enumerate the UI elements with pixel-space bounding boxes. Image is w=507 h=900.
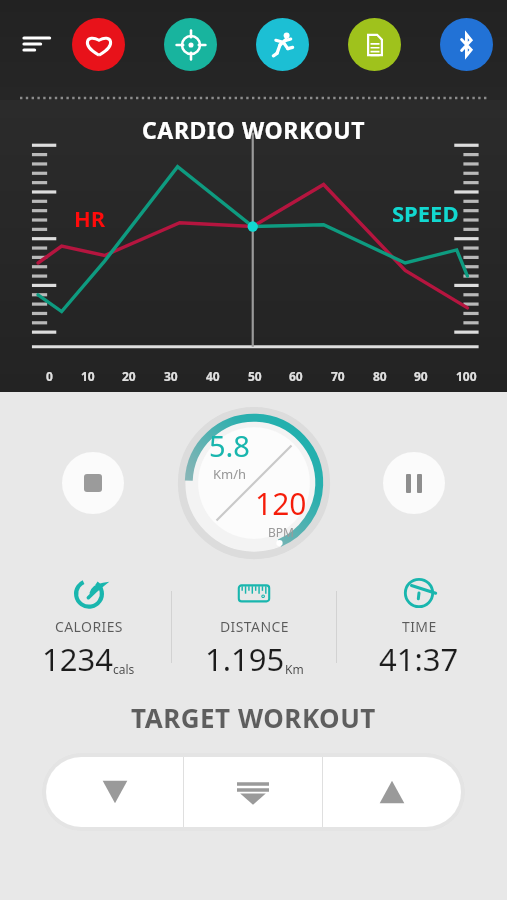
staticText: 5.8 xyxy=(209,426,250,465)
button[interactable]: Menu xyxy=(14,21,60,67)
button[interactable]: Target xyxy=(164,18,217,71)
staticText: BPM xyxy=(268,524,294,540)
staticText: DISTANCE xyxy=(220,617,289,636)
staticText: 70 xyxy=(331,368,345,384)
staticText: 41:37 xyxy=(379,638,459,680)
staticText: TIME xyxy=(402,617,437,636)
button[interactable]: Bluetooth xyxy=(440,18,493,71)
button[interactable]: Heart rate xyxy=(72,18,125,71)
staticText: Km xyxy=(285,661,304,677)
button[interactable]: Set target xyxy=(184,757,322,827)
staticText: SPEED xyxy=(392,198,459,228)
staticText: 120 xyxy=(255,483,307,524)
button[interactable]: Workout gauge xyxy=(179,408,329,558)
staticText: CALORIES xyxy=(55,617,123,636)
button[interactable]: Pause xyxy=(383,452,445,514)
staticText: 1234 xyxy=(42,638,113,680)
staticText: 50 xyxy=(248,368,262,384)
button[interactable]: TIME xyxy=(337,568,501,686)
button[interactable]: Reports xyxy=(348,18,401,71)
staticText: cals xyxy=(113,661,135,677)
staticText: Km/h xyxy=(213,465,247,483)
button[interactable]: DISTANCE xyxy=(172,568,336,686)
staticText: 20 xyxy=(122,368,136,384)
staticText: CARDIO WORKOUT xyxy=(142,114,366,145)
staticText: 90 xyxy=(414,368,428,384)
staticText: 100 xyxy=(456,368,477,384)
button[interactable]: Decrease target xyxy=(46,757,183,827)
staticText: TARGET WORKOUT xyxy=(131,700,376,735)
button[interactable]: CALORIES xyxy=(6,568,171,686)
staticText: 80 xyxy=(373,368,387,384)
staticText: 1.195 xyxy=(205,638,285,680)
staticText: 30 xyxy=(164,368,178,384)
staticText: HR xyxy=(74,203,106,233)
staticText: 10 xyxy=(81,368,95,384)
staticText: 60 xyxy=(289,368,303,384)
button[interactable]: Stop xyxy=(62,452,124,514)
button[interactable]: Activity xyxy=(256,18,309,71)
button[interactable]: Increase target xyxy=(323,757,461,827)
staticText: 0 xyxy=(46,368,53,384)
staticText: 40 xyxy=(206,368,220,384)
